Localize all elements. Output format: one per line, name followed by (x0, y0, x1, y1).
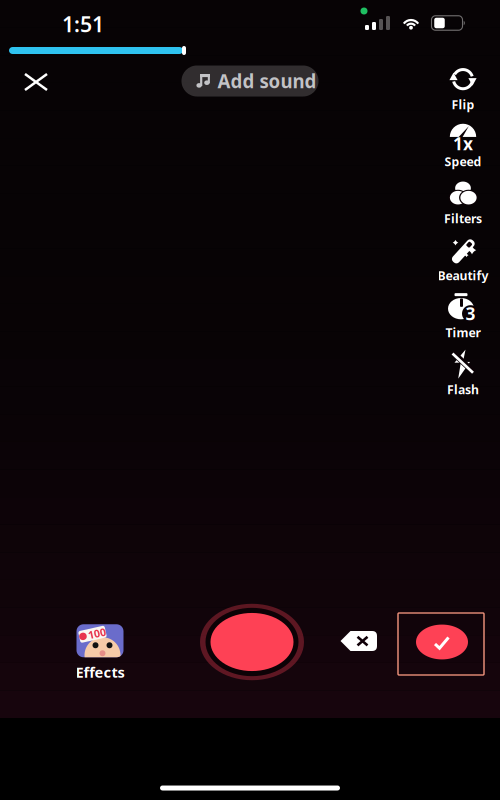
staticText: 3 (465, 302, 475, 325)
button[interactable]: Delete last clip (340, 630, 378, 652)
staticText: Beautify (437, 267, 488, 284)
staticText: Timer (445, 324, 480, 341)
button[interactable]: 1x (426, 121, 500, 169)
staticText: Effects (75, 662, 124, 682)
staticText: Flash (447, 381, 479, 398)
staticText: Flip (451, 96, 474, 113)
button[interactable]: Add sound (181, 65, 318, 96)
button[interactable]: 3 (426, 292, 500, 340)
button[interactable]: Flash (426, 349, 500, 397)
staticText: Speed (444, 153, 481, 170)
staticText: 100 (88, 627, 106, 641)
staticText: 1:51 (62, 10, 104, 38)
staticText: Filters (444, 210, 482, 227)
button[interactable]: Close (14, 60, 58, 104)
button[interactable]: Done (398, 613, 484, 675)
staticText: Add sound (217, 68, 316, 94)
button[interactable]: Record (198, 600, 306, 684)
button[interactable]: Beautify (426, 235, 500, 283)
button[interactable]: Flip (426, 64, 500, 112)
button[interactable]: Filters (426, 178, 500, 226)
staticText: 1x (453, 132, 473, 155)
button[interactable]: 100 (62, 625, 138, 681)
